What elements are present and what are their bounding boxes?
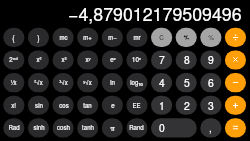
staticText: 0 xyxy=(159,120,165,135)
staticText: x! xyxy=(11,101,16,110)
button[interactable]: 8 xyxy=(176,50,197,69)
staticText: Rad xyxy=(8,123,20,132)
button[interactable]: 6 xyxy=(200,73,221,92)
staticText: m+ xyxy=(83,33,92,42)
button[interactable]: one over x xyxy=(3,73,24,92)
staticText: C xyxy=(159,33,164,42)
button[interactable]: second xyxy=(3,50,24,69)
button[interactable]: Rand xyxy=(126,118,147,137)
staticText: ln xyxy=(110,78,115,87)
staticText: log₁₀ xyxy=(130,78,143,87)
button[interactable]: percent xyxy=(200,28,221,47)
staticText: x² xyxy=(36,55,42,64)
button[interactable]: x cubed xyxy=(53,50,74,69)
staticText: mc xyxy=(59,33,68,42)
button[interactable]: 5 xyxy=(176,73,197,92)
button[interactable]: 0 xyxy=(151,118,197,137)
staticText: ʸ√x xyxy=(83,78,92,87)
staticText: 3 xyxy=(208,98,214,113)
button[interactable]: e xyxy=(102,96,123,115)
staticText: % xyxy=(208,33,214,42)
button[interactable]: clear xyxy=(151,28,172,47)
button[interactable]: 1 xyxy=(151,96,172,115)
button[interactable]: tanh xyxy=(77,118,98,137)
button[interactable]: close parenthesis xyxy=(28,28,49,47)
button[interactable]: decimal separator xyxy=(200,118,221,137)
button[interactable]: equals xyxy=(225,118,246,137)
button[interactable]: multiply xyxy=(225,50,246,69)
button[interactable]: sin xyxy=(28,96,49,115)
button[interactable]: cube root xyxy=(53,73,74,92)
staticText: EE xyxy=(132,101,141,110)
button[interactable]: e to the x xyxy=(102,50,123,69)
button[interactable]: 4 xyxy=(151,73,172,92)
button[interactable]: x to the y xyxy=(77,50,98,69)
staticText: 10ˣ xyxy=(132,55,141,64)
staticText: Rand xyxy=(129,123,144,132)
staticText: 4 xyxy=(159,75,165,90)
staticText: ) xyxy=(37,33,40,43)
button[interactable]: m minus xyxy=(102,28,123,47)
button[interactable]: minus xyxy=(225,73,246,92)
staticText: ²√x xyxy=(34,78,43,87)
button[interactable]: 3 xyxy=(200,96,221,115)
button[interactable]: Rad xyxy=(3,118,24,137)
button[interactable]: mr xyxy=(126,28,147,47)
staticText: tan xyxy=(83,101,92,110)
staticText: 2ⁿᵈ xyxy=(9,55,18,64)
staticText: e xyxy=(111,101,115,110)
staticText: sinh xyxy=(33,123,45,132)
button[interactable]: ten to the x xyxy=(126,50,147,69)
button[interactable]: pi xyxy=(102,118,123,137)
staticText: eˣ xyxy=(110,55,116,64)
button[interactable]: x squared xyxy=(28,50,49,69)
button[interactable]: open parenthesis xyxy=(3,28,24,47)
staticText: −4,879012179509496 xyxy=(68,1,242,26)
button[interactable]: cos xyxy=(53,96,74,115)
staticText: ¹⁄x xyxy=(10,78,17,87)
button[interactable]: factorial xyxy=(3,96,24,115)
staticText: ( xyxy=(12,33,15,43)
staticText: , xyxy=(209,120,212,135)
staticText: π xyxy=(110,123,115,133)
staticText: tanh xyxy=(82,123,94,132)
staticText: 2 xyxy=(184,98,190,113)
button[interactable]: ln xyxy=(102,73,123,92)
staticText: mr xyxy=(133,33,141,42)
button[interactable]: square root xyxy=(28,73,49,92)
button[interactable]: m+ xyxy=(77,28,98,47)
button[interactable]: log base ten xyxy=(126,73,147,92)
button[interactable]: divide xyxy=(225,28,246,47)
button[interactable]: sinh xyxy=(28,118,49,137)
button[interactable]: mc xyxy=(53,28,74,47)
staticText: ³√x xyxy=(59,78,68,87)
staticText: 1 xyxy=(159,98,165,113)
staticText: m− xyxy=(108,33,117,42)
staticText: xʸ xyxy=(85,55,91,64)
staticText: 9 xyxy=(208,52,214,67)
button[interactable]: plus minus xyxy=(176,28,197,47)
staticText: x³ xyxy=(61,55,67,64)
staticText: sin xyxy=(35,101,43,110)
button[interactable]: plus xyxy=(225,96,246,115)
staticText: 5 xyxy=(184,75,190,90)
staticText: 7 xyxy=(159,52,165,67)
button[interactable]: tan xyxy=(77,96,98,115)
staticText: cos xyxy=(59,101,69,110)
button[interactable]: 9 xyxy=(200,50,221,69)
button[interactable]: cosh xyxy=(53,118,74,137)
button[interactable]: 7 xyxy=(151,50,172,69)
button[interactable]: EE xyxy=(126,96,147,115)
staticText: cosh xyxy=(57,123,70,132)
button[interactable]: 2 xyxy=(176,96,197,115)
staticText: 6 xyxy=(208,75,214,90)
button[interactable]: y root of x xyxy=(77,73,98,92)
staticText: 8 xyxy=(184,52,190,67)
